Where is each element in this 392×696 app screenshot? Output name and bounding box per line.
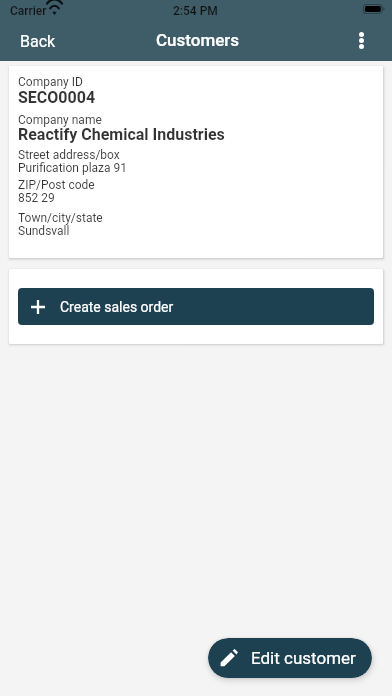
staticText: Create sales order bbox=[60, 299, 174, 315]
staticText: Company ID bbox=[18, 75, 83, 89]
staticText: Carrier bbox=[10, 4, 47, 18]
staticText: SECO0004 bbox=[18, 88, 96, 107]
staticText: Street address/box bbox=[18, 148, 120, 162]
staticText: 852 29 bbox=[18, 191, 55, 205]
staticText: Back bbox=[20, 32, 56, 51]
button[interactable]: More options bbox=[345, 26, 392, 57]
staticText: Purification plaza 91 bbox=[18, 161, 128, 175]
staticText: Company name bbox=[18, 113, 102, 127]
staticText: Reactify Chemical Industries bbox=[18, 125, 225, 144]
staticText: Customers bbox=[156, 30, 240, 50]
staticText: 2:54 PM bbox=[173, 4, 218, 18]
staticText: Town/city/state bbox=[18, 211, 103, 225]
button[interactable]: Back bbox=[0, 23, 70, 60]
staticText: Edit customer bbox=[251, 648, 356, 668]
button[interactable]: Edit customer bbox=[208, 638, 372, 678]
button[interactable]: Create sales order bbox=[18, 288, 374, 325]
staticText: Sundsvall bbox=[18, 224, 70, 238]
staticText: ZIP/Post code bbox=[18, 178, 95, 192]
